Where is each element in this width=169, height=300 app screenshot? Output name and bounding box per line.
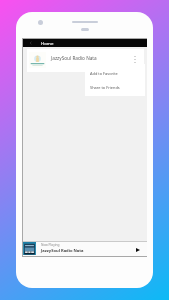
staticText: JazzySoul Radio Nata [41,248,84,254]
staticText: JazzySoul Radio Nata [51,55,97,61]
button[interactable]: Share to Friends [85,80,145,94]
staticText: Add to Favorite [90,71,118,76]
button[interactable]: Navigate up [27,39,35,47]
staticText: Home [41,40,54,46]
button[interactable]: Add to Favorite [85,66,145,80]
button[interactable]: Now Playing [23,241,147,256]
staticText: Share to Friends [90,85,120,90]
button[interactable]: JazzySoul Radio Nata [27,49,144,72]
button[interactable]: More options [130,55,139,64]
staticText: Now Playing [41,243,60,247]
button[interactable]: Play [133,245,142,254]
